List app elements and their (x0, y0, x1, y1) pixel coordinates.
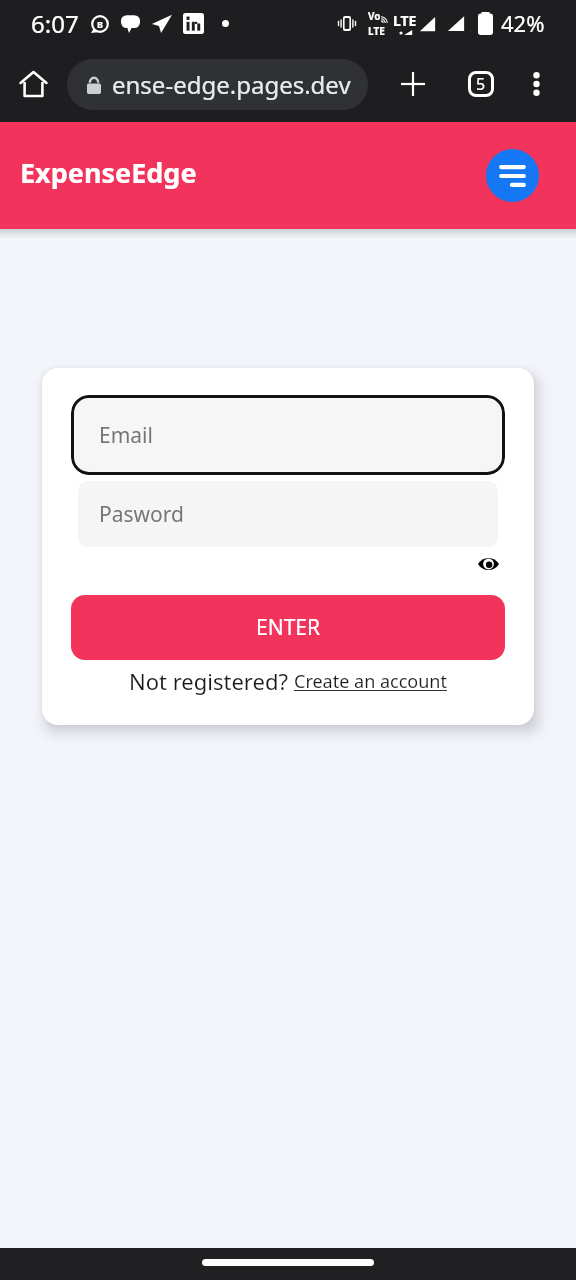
staticText: Create an account (294, 669, 447, 694)
staticText: Email (99, 421, 153, 450)
button[interactable]: ense-edge.pages.dev (67, 59, 368, 110)
staticText: LTE (368, 24, 385, 38)
staticText: 5 (476, 73, 486, 95)
staticText: 6:07 (31, 7, 79, 40)
button[interactable]: Create an account (294, 665, 447, 697)
staticText: B (97, 18, 103, 30)
button[interactable]: Show password (472, 548, 504, 580)
staticText: Pasword (99, 500, 184, 529)
button[interactable]: Email (71, 395, 505, 475)
button[interactable]: ENTER (71, 595, 505, 660)
button[interactable]: Pasword (78, 481, 498, 547)
button[interactable]: Tabs (457, 60, 505, 108)
staticText: ENTER (256, 613, 321, 642)
staticText: Not registered? (129, 666, 294, 696)
staticText: ExpenseEdge (20, 154, 197, 191)
button[interactable]: New tab (389, 60, 437, 108)
staticText: LTE (393, 11, 417, 30)
button[interactable]: Home (9, 60, 57, 108)
button[interactable]: Menu (486, 149, 539, 202)
staticText: ense-edge.pages.dev (112, 68, 351, 101)
staticText: 42% (501, 8, 545, 38)
button[interactable]: More options (512, 60, 560, 108)
staticText: Vo (368, 9, 381, 23)
